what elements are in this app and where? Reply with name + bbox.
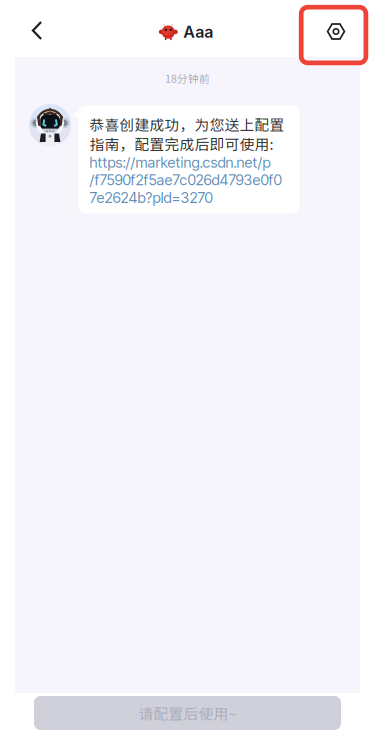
staticText: Aaa bbox=[183, 22, 213, 42]
button[interactable]: Settings bbox=[314, 9, 358, 53]
staticText: 18分钟前 bbox=[165, 70, 210, 86]
staticText: /f7590f2f5ae7c026d4793e0f0 bbox=[89, 171, 281, 189]
button[interactable]: Back bbox=[15, 8, 59, 52]
staticText: 7e2624b?pId=3270 bbox=[89, 189, 212, 206]
staticText: 恭喜创建成功，为您送上配置 bbox=[89, 113, 284, 135]
button[interactable]: 请配置后使用~ bbox=[34, 696, 341, 730]
staticText: https://marketing.csdn.net/p bbox=[89, 154, 270, 171]
staticText: 指南，配置完成后即可使用: bbox=[89, 133, 273, 154]
staticText: 请配置后使用~ bbox=[138, 702, 236, 724]
